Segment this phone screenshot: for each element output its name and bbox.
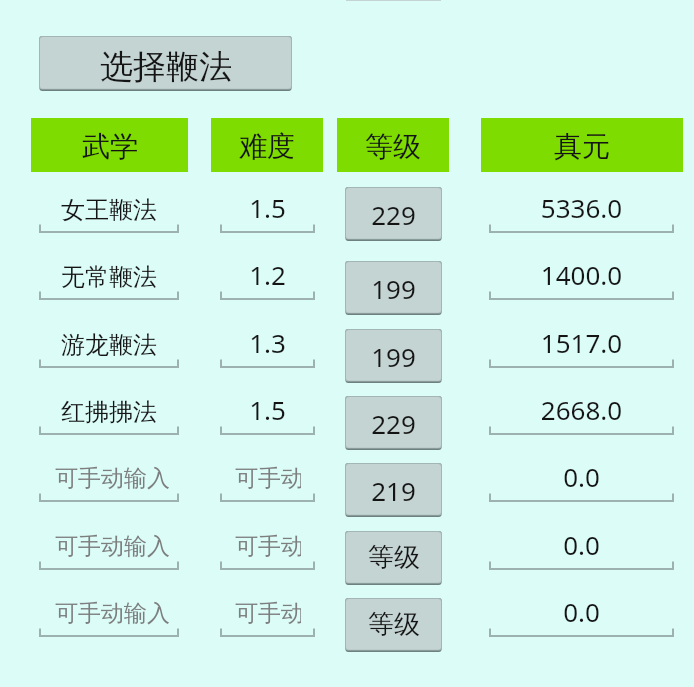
- staticText: 1.5: [230, 392, 305, 432]
- button[interactable]: 等级 229: [345, 187, 442, 241]
- staticText: 可手动输入: [235, 464, 301, 504]
- button[interactable]: 1.5: [220, 390, 315, 440]
- staticText: 5336.0: [499, 190, 664, 230]
- staticText: 1.2: [230, 257, 305, 297]
- button[interactable]: 1400.0: [489, 255, 674, 305]
- staticText: 0.0: [499, 527, 664, 567]
- staticText: 可手动输入: [55, 599, 169, 639]
- button[interactable]: 5336.0: [489, 188, 674, 238]
- staticText: 可手动输入: [235, 532, 301, 572]
- staticText: 可手动输入: [235, 599, 301, 639]
- button[interactable]: 0.0: [489, 592, 674, 642]
- button[interactable]: 等级 199: [345, 329, 442, 383]
- button[interactable]: 可手动输入: [220, 525, 315, 575]
- staticText: 可手动输入: [55, 464, 169, 504]
- staticText: 199: [371, 339, 416, 374]
- button[interactable]: 女王鞭法: [39, 188, 179, 238]
- button[interactable]: 可手动输入: [220, 592, 315, 642]
- button[interactable]: 武学: [31, 118, 188, 172]
- button[interactable]: 游龙鞭法: [39, 323, 179, 373]
- button[interactable]: 0.0: [489, 525, 674, 575]
- button[interactable]: 等级 等级: [345, 531, 442, 585]
- button[interactable]: 等级: [337, 118, 449, 172]
- staticText: 229: [371, 197, 416, 232]
- button[interactable]: 选择鞭法: [39, 36, 292, 91]
- button[interactable]: 2668.0: [489, 390, 674, 440]
- staticText: 1400.0: [499, 257, 664, 297]
- staticText: 199: [371, 271, 416, 306]
- staticText: 1.5: [230, 190, 305, 230]
- staticText: 2668.0: [499, 392, 664, 432]
- button[interactable]: 等级 199: [345, 261, 442, 315]
- staticText: 难度: [239, 129, 295, 164]
- staticText: 无常鞭法: [49, 262, 169, 302]
- staticText: 229: [371, 406, 416, 441]
- button[interactable]: 难度: [211, 118, 323, 172]
- staticText: 游龙鞭法: [49, 330, 169, 370]
- staticText: 女王鞭法: [49, 195, 169, 235]
- button[interactable]: 等级 229: [345, 396, 442, 450]
- button[interactable]: 等级 219: [345, 463, 442, 517]
- staticText: 1.3: [230, 325, 305, 365]
- staticText: 等级: [368, 608, 420, 641]
- button[interactable]: 等级 等级: [345, 598, 442, 652]
- staticText: 1517.0: [499, 325, 664, 365]
- button[interactable]: 无常鞭法: [39, 255, 179, 305]
- button[interactable]: 可手动输入: [39, 457, 179, 507]
- button[interactable]: 可手动输入: [39, 525, 179, 575]
- staticText: 0.0: [499, 459, 664, 499]
- staticText: 红拂拂法: [49, 397, 169, 437]
- staticText: 等级: [365, 129, 421, 164]
- button[interactable]: 可手动输入: [220, 457, 315, 507]
- staticText: 等级: [368, 541, 420, 574]
- button[interactable]: 红拂拂法: [39, 390, 179, 440]
- button[interactable]: 真元: [481, 118, 683, 172]
- staticText: 选择鞭法: [100, 46, 232, 88]
- button[interactable]: 1.2: [220, 255, 315, 305]
- staticText: 0.0: [499, 594, 664, 634]
- button[interactable]: 1.5: [220, 188, 315, 238]
- button[interactable]: 1517.0: [489, 323, 674, 373]
- staticText: 武学: [82, 129, 138, 164]
- staticText: 真元: [554, 129, 610, 164]
- staticText: 可手动输入: [55, 532, 169, 572]
- button[interactable]: 0.0: [489, 457, 674, 507]
- button[interactable]: 可手动输入: [39, 592, 179, 642]
- button[interactable]: 1.3: [220, 323, 315, 373]
- staticText: 219: [371, 473, 416, 508]
